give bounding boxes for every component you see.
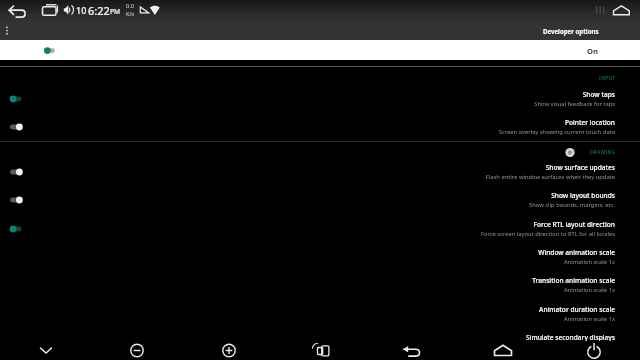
staticText: Animator duration scale [539, 305, 615, 314]
staticText: Screen overlay showing current touch dat… [498, 128, 615, 136]
button[interactable]: Volume up [207, 341, 251, 360]
staticText: Animation scale 1x [563, 258, 615, 266]
button[interactable]: Back [390, 341, 434, 360]
staticText: Show visual feedback for taps [534, 100, 615, 108]
button[interactable]: Simulate secondary displays [0, 328, 640, 356]
staticText: DRAWING [590, 149, 616, 155]
staticText: K/s [126, 10, 135, 17]
button[interactable]: Force RTL layout direction [0, 215, 640, 243]
button[interactable]: On [0, 40, 640, 60]
button[interactable]: Volume down [115, 341, 159, 360]
staticText: PM [110, 7, 120, 16]
button[interactable]: Collapse [24, 341, 68, 360]
button[interactable]: Show taps [0, 85, 640, 113]
staticText: Show layout bounds [551, 191, 615, 200]
button[interactable]: Animator duration scale [0, 300, 640, 328]
staticText: On [587, 46, 598, 56]
staticText: INPUT [599, 75, 616, 81]
staticText: Force screen layout direction to RTL for… [480, 230, 615, 238]
staticText: Transition animation scale [532, 276, 615, 285]
staticText: Simulate secondary displays [526, 333, 615, 342]
staticText: Window animation scale [538, 248, 615, 257]
button[interactable]: Show layout bounds [0, 186, 640, 214]
button[interactable]: Power [572, 341, 616, 360]
staticText: 0.0 [126, 2, 134, 9]
staticText: Force RTL layout direction [533, 220, 615, 229]
button[interactable]: Pointer location [0, 113, 640, 141]
staticText: Pointer location [564, 118, 615, 127]
staticText: Animation scale 1x [563, 315, 615, 323]
staticText: 6:22 [88, 3, 110, 18]
button[interactable]: Home [481, 341, 525, 360]
staticText: Show taps [582, 90, 615, 99]
button[interactable]: Transition animation scale [0, 271, 640, 299]
button[interactable]: Window animation scale [0, 243, 640, 271]
staticText: Flash entire window surfaces when they u… [485, 173, 615, 181]
button[interactable]: More options [0, 21, 16, 40]
staticText: 10 [76, 4, 87, 16]
button[interactable]: Rotate screen [300, 341, 344, 360]
staticText: Show surface updates [545, 163, 615, 172]
staticText: Animation scale 1x [563, 286, 615, 294]
button[interactable]: Show surface updates [0, 158, 640, 186]
staticText: Developer options [543, 27, 599, 35]
staticText: Show clip bounds, margins, etc. [529, 201, 615, 209]
